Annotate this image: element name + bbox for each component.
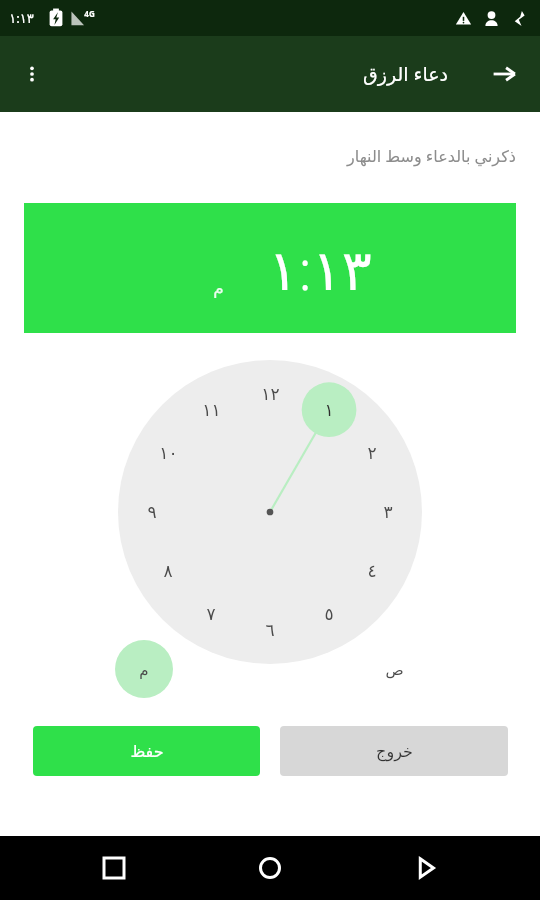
staticText: ١٠ <box>159 443 178 463</box>
staticText: دعاء الرزق <box>363 61 448 87</box>
button[interactable]: ٩ <box>132 492 172 532</box>
button[interactable]: More options <box>8 50 56 98</box>
staticText: ٥ <box>324 604 334 624</box>
staticText: م <box>139 661 149 678</box>
button[interactable]: ٥ <box>309 594 349 634</box>
staticText: ٨ <box>163 561 173 581</box>
staticText: ٢ <box>367 443 377 463</box>
staticText: ١:١٣ <box>9 9 34 27</box>
staticText: ١:١٣ <box>268 230 372 306</box>
button[interactable]: ٧ <box>191 594 231 634</box>
button[interactable]: م <box>24 203 516 333</box>
button[interactable]: م <box>115 640 173 698</box>
staticText: ص <box>385 661 404 678</box>
button[interactable]: ١١ <box>191 390 231 430</box>
button[interactable]: ص <box>365 640 423 698</box>
staticText: ٧ <box>206 604 216 624</box>
staticText: ٣ <box>383 502 393 522</box>
button[interactable]: خروج <box>280 726 508 776</box>
staticText: حفظ <box>130 742 164 761</box>
button[interactable]: ٣ <box>368 492 408 532</box>
button[interactable]: Back <box>402 844 450 892</box>
button[interactable]: ٦ <box>250 610 290 650</box>
staticText: ١٢ <box>261 384 280 404</box>
staticText: ٩ <box>147 502 157 522</box>
button[interactable]: Recents <box>90 844 138 892</box>
staticText: ١١ <box>202 400 221 420</box>
button[interactable]: ١ <box>309 390 349 430</box>
button[interactable]: ٨ <box>148 551 188 591</box>
button[interactable]: Back <box>480 50 528 98</box>
staticText: ذكرني بالدعاء وسط النهار <box>347 145 516 167</box>
staticText: ٤ <box>367 561 377 581</box>
staticText: م <box>213 278 224 298</box>
button[interactable]: ١٢ <box>250 374 290 414</box>
staticText: 4G <box>84 8 95 19</box>
button[interactable]: ٢ <box>352 433 392 473</box>
staticText: ٦ <box>265 620 275 640</box>
staticText: خروج <box>376 742 413 761</box>
button[interactable]: ٤ <box>352 551 392 591</box>
staticText: ١ <box>324 400 334 420</box>
button[interactable]: حفظ <box>33 726 260 776</box>
button[interactable]: Home <box>246 844 294 892</box>
button[interactable]: ١٠ <box>148 433 188 473</box>
